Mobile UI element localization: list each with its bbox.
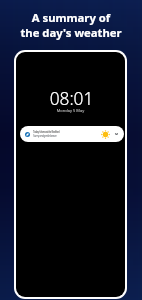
staticText: A summary of the day's weather — [0, 10, 142, 41]
staticText: Monday 5 May — [16, 108, 125, 113]
staticText: Today's forecast for Bedford — [33, 130, 60, 134]
staticText: 08:01 — [17, 87, 125, 111]
staticText: Sunny and gentle breeze — [33, 134, 57, 138]
button[interactable]: Today's forecast for Bedford — [20, 126, 124, 142]
other: Expand — [115, 133, 118, 135]
